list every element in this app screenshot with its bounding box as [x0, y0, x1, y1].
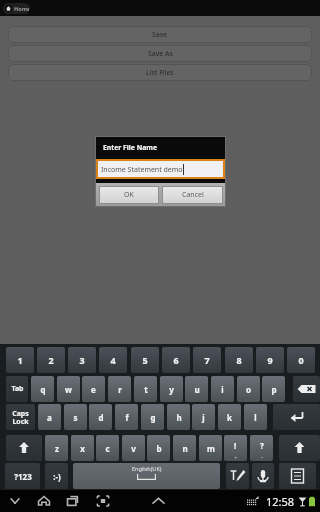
staticText: 2 [48, 354, 54, 366]
button[interactable]: 8 [225, 347, 253, 373]
button[interactable]: x [71, 435, 94, 461]
button[interactable]: s [64, 404, 87, 430]
button[interactable]: n [173, 435, 196, 461]
button[interactable]: ?123 [5, 463, 40, 489]
button[interactable]: Save As [8, 45, 312, 62]
staticText: List Files [146, 68, 174, 78]
button[interactable]: r [108, 376, 131, 402]
button[interactable]: Voice input [252, 463, 274, 489]
button[interactable]: Home [5, 3, 29, 14]
button[interactable]: j [192, 404, 215, 430]
button[interactable]: Backspace [293, 376, 320, 402]
button[interactable]: e [82, 376, 105, 402]
button[interactable]: Enter [273, 404, 320, 430]
staticText: :-) [53, 471, 61, 482]
staticText: 6 [173, 354, 179, 366]
staticText: a [47, 412, 52, 423]
staticText: o [246, 384, 251, 395]
staticText: r [118, 384, 122, 395]
staticText: 7 [204, 354, 210, 366]
staticText: Cancel [182, 190, 204, 200]
button[interactable]: Shift [279, 435, 320, 461]
staticText: . [261, 452, 263, 460]
button[interactable]: b [147, 435, 170, 461]
button[interactable]: Shift [6, 435, 42, 461]
staticText: OK [124, 190, 134, 200]
button[interactable]: v [122, 435, 145, 461]
button[interactable]: English(UK) [73, 463, 220, 489]
button[interactable]: 7 [193, 347, 221, 373]
staticText: v [131, 443, 136, 454]
staticText: c [105, 443, 110, 454]
button[interactable]: :-) [45, 463, 68, 489]
staticText: 4 [110, 354, 116, 366]
staticText: g [150, 412, 156, 423]
button[interactable]: 0 [287, 347, 315, 373]
staticText: d [98, 412, 104, 423]
staticText: u [194, 384, 200, 395]
button[interactable]: Handwriting [226, 463, 249, 489]
button[interactable]: t [134, 376, 157, 402]
staticText: 9 [267, 354, 273, 366]
button[interactable]: p [262, 376, 285, 402]
staticText: Tab [11, 384, 24, 394]
button[interactable]: u [185, 376, 208, 402]
button[interactable]: m [199, 435, 222, 461]
staticText: 5 [142, 354, 148, 366]
button[interactable]: y [160, 376, 183, 402]
button[interactable]: Cancel [163, 187, 222, 203]
button[interactable]: z [45, 435, 68, 461]
button[interactable]: d [89, 404, 112, 430]
staticText: ?123 [14, 471, 32, 482]
staticText: 0 [298, 354, 304, 366]
button[interactable]: f [115, 404, 138, 430]
staticText: p [271, 384, 277, 395]
staticText: i [221, 384, 224, 395]
button[interactable]: Caps Lock [6, 404, 35, 430]
button[interactable]: k [218, 404, 241, 430]
staticText: 3 [79, 354, 85, 366]
button[interactable]: l [244, 404, 267, 430]
staticText: ? [260, 440, 264, 451]
button[interactable]: 3 [68, 347, 96, 373]
staticText: ! [234, 440, 237, 451]
staticText: Enter File Name [103, 143, 157, 152]
staticText: f [125, 412, 129, 423]
button[interactable]: g [141, 404, 164, 430]
button[interactable]: i [211, 376, 234, 402]
button[interactable]: 9 [256, 347, 284, 373]
button[interactable]: ? [250, 435, 273, 461]
button[interactable]: w [57, 376, 80, 402]
staticText: Caps Lock [12, 409, 29, 426]
staticText: w [65, 384, 72, 395]
staticText: 12:58 [266, 494, 295, 509]
button[interactable]: c [96, 435, 119, 461]
button[interactable]: 6 [162, 347, 190, 373]
staticText: j [202, 412, 205, 423]
staticText: e [91, 384, 96, 395]
button[interactable]: Save [8, 26, 312, 43]
button[interactable]: 4 [99, 347, 127, 373]
button[interactable]: 5 [131, 347, 159, 373]
staticText: b [156, 443, 162, 454]
button[interactable]: List Files [8, 64, 312, 81]
button[interactable]: 1 [6, 347, 34, 373]
button[interactable]: Income Statement demo [98, 161, 223, 177]
staticText: k [227, 412, 232, 423]
staticText: y [169, 384, 174, 395]
staticText: Income Statement demo [101, 165, 183, 175]
button[interactable]: 2 [37, 347, 65, 373]
staticText: t [144, 384, 148, 395]
button[interactable]: a [38, 404, 61, 430]
staticText: , [235, 452, 237, 460]
button[interactable]: o [237, 376, 260, 402]
button[interactable]: h [167, 404, 190, 430]
button[interactable]: ! [224, 435, 247, 461]
button[interactable]: q [31, 376, 54, 402]
button[interactable]: OK [100, 187, 158, 203]
staticText: x [80, 443, 85, 454]
staticText: English(UK) [132, 465, 162, 472]
staticText: Home [14, 5, 29, 12]
button[interactable]: Tab [6, 376, 28, 402]
button[interactable]: Clipboard [279, 463, 316, 489]
